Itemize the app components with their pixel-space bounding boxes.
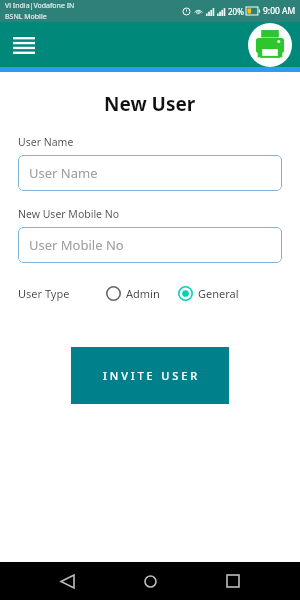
button[interactable]: User Mobile No [18,227,282,263]
staticText: BSNL Mobile [5,12,47,22]
button[interactable]: Admin [106,286,160,301]
staticText: New User Mobile No [18,207,120,221]
staticText: I N V I T E U S E R [103,368,198,383]
staticText: User Mobile No [29,236,124,254]
staticText: User Name [29,164,98,182]
button[interactable]: User Name [18,155,282,191]
staticText: 9:00 AM [263,5,296,17]
button[interactable]: Menu [10,31,38,59]
staticText: User Name [18,135,74,149]
staticText: New User [104,91,196,117]
staticText: Admin [126,286,160,301]
button[interactable]: Home [135,566,165,596]
staticText: General [198,286,239,301]
button[interactable]: Back [52,566,82,596]
staticText: Vi India|Vodafone IN [5,1,75,11]
staticText: 20% [228,6,244,17]
button[interactable]: I N V I T E U S E R [71,347,229,404]
button[interactable]: Print [247,22,292,67]
button[interactable]: General [178,286,239,301]
staticText: User Type [18,286,70,301]
button[interactable]: Recent apps [218,566,248,596]
